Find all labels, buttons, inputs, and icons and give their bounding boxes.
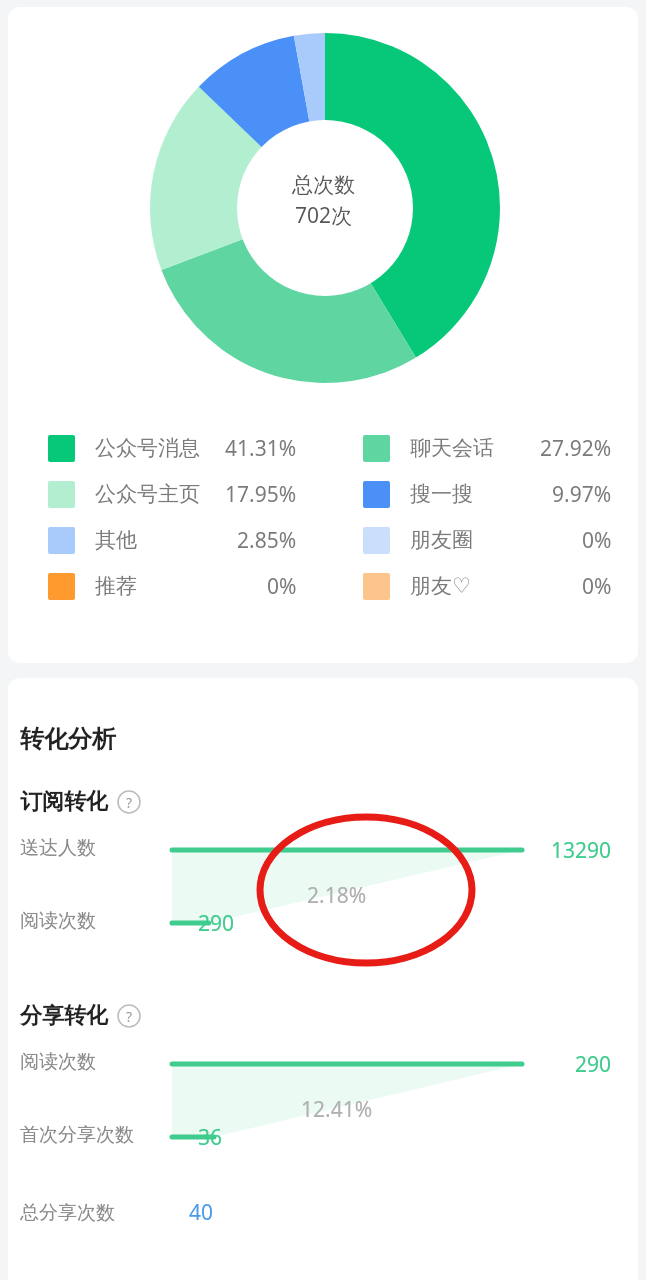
button[interactable]: 推荐 [48,563,297,609]
staticText: 12.41% [301,1095,373,1124]
staticText: 2.85% [237,526,297,555]
button[interactable]: 其他 [48,517,297,563]
staticText: 0% [582,526,612,555]
staticText: 其他 [95,527,137,553]
button[interactable]: 朋友圈 [363,517,612,563]
staticText: 17.95% [225,480,297,509]
staticText: 总次数 [292,172,355,198]
staticText: 290 [198,909,235,938]
staticText: 搜一搜 [410,481,473,507]
staticText: ? [126,1007,133,1026]
button[interactable]: 订阅转化 [20,788,141,816]
button[interactable]: 公众号消息 [48,425,297,471]
staticText: 41.31% [225,434,297,463]
button[interactable]: 搜一搜 [363,471,612,517]
other: Help [117,790,141,814]
staticText: 朋友♡ [410,573,471,599]
staticText: 40 [189,1198,214,1227]
staticText: 公众号消息 [95,435,200,461]
staticText: 聊天会话 [410,435,494,461]
staticText: ? [126,793,133,812]
staticText: 公众号主页 [95,481,200,507]
button[interactable]: 朋友♡ [363,563,612,609]
button[interactable]: 送达人数 [8,828,638,938]
staticText: 13290 [551,836,612,865]
staticText: 订阅转化 [20,788,108,816]
staticText: 702次 [295,201,353,230]
staticText: 首次分享次数 [20,1123,134,1147]
button[interactable]: 公众号主页 [48,471,297,517]
staticText: 转化分析 [20,724,116,754]
staticText: 朋友圈 [410,527,473,553]
button[interactable]: 阅读次数 [8,1042,638,1152]
staticText: 阅读次数 [20,909,96,933]
staticText: 290 [575,1050,612,1079]
button[interactable]: 聊天会话 [363,425,612,471]
staticText: 9.97% [552,480,612,509]
staticText: 分享转化 [20,1002,108,1030]
staticText: 阅读次数 [20,1050,96,1074]
staticText: 送达人数 [20,836,96,860]
staticText: 36 [198,1123,223,1152]
staticText: 0% [267,572,297,601]
staticText: 2.18% [307,881,367,910]
staticText: 0% [582,572,612,601]
button[interactable]: 分享转化 [20,1002,141,1030]
staticText: 推荐 [95,573,137,599]
staticText: 27.92% [540,434,612,463]
staticText: 总分享次数 [20,1201,115,1225]
other: Help [117,1004,141,1028]
